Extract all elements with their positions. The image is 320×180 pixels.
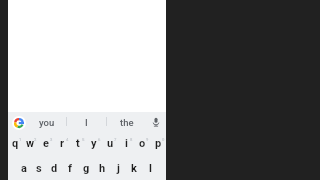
staticText: i [125,137,128,150]
button[interactable]: i [118,131,134,156]
staticText: y [91,137,97,150]
staticText: e [43,137,49,150]
button[interactable]: d [46,156,62,180]
staticText: l [149,162,152,175]
button[interactable]: s [31,156,46,180]
staticText: 8 [130,137,133,142]
staticText: w [26,137,35,150]
staticText: 3 [50,137,53,142]
staticText: a [21,162,27,175]
staticText: r [60,137,65,150]
button[interactable]: e [38,131,54,156]
button[interactable]: h [94,156,110,180]
button[interactable]: a [16,156,31,180]
staticText: 7 [114,137,117,142]
staticText: 4 [66,137,69,142]
staticText: k [131,162,137,175]
button[interactable]: j [110,156,126,180]
button[interactable]: q [8,131,23,156]
button[interactable]: o [134,131,150,156]
staticText: g [83,162,90,175]
staticText: 9 [146,137,149,142]
staticText: s [36,162,42,175]
button[interactable]: the [107,112,146,131]
button[interactable]: you [28,112,66,131]
staticText: p [155,137,162,150]
button[interactable]: w [23,131,38,156]
staticText: t [76,137,80,150]
button[interactable]: f [62,156,78,180]
staticText: 5 [82,137,85,142]
staticText: the [120,117,134,128]
staticText: h [99,162,106,175]
staticText: d [51,162,58,175]
staticText: u [107,137,114,150]
staticText: I [85,117,88,128]
button[interactable]: Voice input [146,112,166,131]
staticText: you [39,117,55,128]
button[interactable]: l [142,156,158,180]
button[interactable]: Google Search [8,112,28,131]
button[interactable]: y [86,131,102,156]
staticText: j [117,162,120,175]
button[interactable]: u [102,131,118,156]
button[interactable]: p [150,131,166,156]
staticText: 6 [98,137,101,142]
button[interactable]: k [126,156,142,180]
button[interactable]: t [70,131,86,156]
button[interactable]: I [67,112,106,131]
staticText: f [68,162,72,175]
staticText: o [139,137,146,150]
staticText: q [12,137,19,150]
staticText: 1 [19,137,22,142]
staticText: 0 [162,137,165,142]
staticText: 2 [34,137,37,142]
button[interactable]: g [78,156,94,180]
button[interactable]: r [54,131,70,156]
